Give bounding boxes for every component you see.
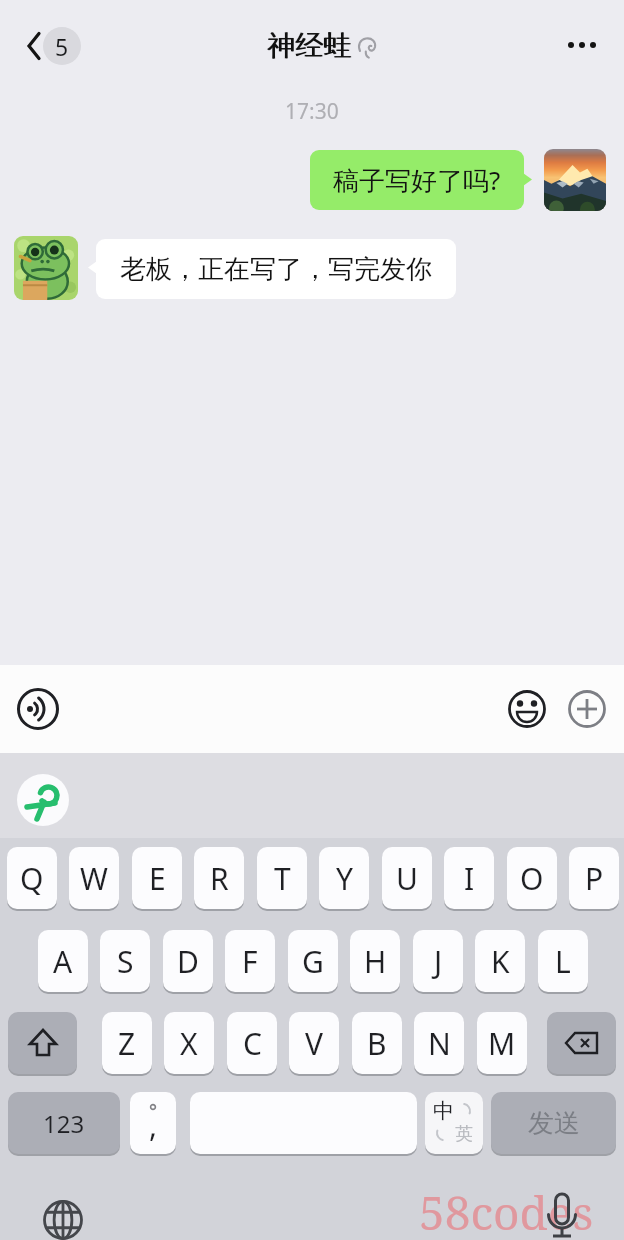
button[interactable]: D [163, 930, 213, 992]
button[interactable]: I [444, 847, 494, 909]
staticText: 发送 [528, 1107, 580, 1140]
button[interactable]: Y [319, 847, 369, 909]
staticText: R [210, 858, 229, 899]
staticText: B [367, 1023, 387, 1064]
staticText: L [555, 941, 571, 982]
staticText: S [117, 941, 134, 982]
button[interactable]: B [352, 1012, 402, 1074]
button[interactable]: G [288, 930, 338, 992]
staticText: X [180, 1023, 198, 1064]
button[interactable] [40, 1197, 86, 1240]
staticText: J [434, 941, 443, 982]
staticText: N [428, 1023, 451, 1064]
button[interactable]: 发送 [491, 1092, 616, 1154]
button[interactable] [14, 24, 54, 68]
button[interactable]: Q [7, 847, 57, 909]
staticText: I [464, 858, 475, 899]
button[interactable]: S [100, 930, 150, 992]
button[interactable]: 稿子写好了吗? [310, 150, 524, 210]
button[interactable]: L [538, 930, 588, 992]
staticText: O [520, 858, 544, 899]
button[interactable]: F [225, 930, 275, 992]
staticText: G [302, 941, 324, 982]
button[interactable] [544, 149, 606, 211]
button[interactable]: T [257, 847, 307, 909]
staticText: W [80, 858, 108, 899]
button[interactable]: C [227, 1012, 277, 1074]
button[interactable] [8, 1012, 77, 1074]
staticText: U [396, 858, 418, 899]
staticText: 中 [433, 1098, 454, 1124]
button[interactable]: O [507, 847, 557, 909]
staticText: , [149, 1105, 158, 1146]
button[interactable] [565, 687, 609, 731]
button[interactable]: N [414, 1012, 464, 1074]
staticText: E [149, 858, 166, 899]
button[interactable] [556, 24, 608, 66]
button[interactable]: 123 [8, 1092, 120, 1154]
staticText: Q [20, 858, 44, 899]
staticText: 老板，正在写了，写完发你 [120, 253, 432, 286]
button[interactable]: P [569, 847, 619, 909]
staticText: 123 [43, 1107, 85, 1140]
button[interactable]: V [289, 1012, 339, 1074]
button[interactable]: Z [102, 1012, 152, 1074]
staticText: F [242, 941, 258, 982]
button[interactable]: X [164, 1012, 214, 1074]
button[interactable]: K [475, 930, 525, 992]
staticText: M [488, 1023, 516, 1064]
staticText: 58codes [419, 1181, 594, 1240]
staticText: P [585, 858, 604, 899]
staticText: Z [118, 1023, 136, 1064]
button[interactable]: J [413, 930, 463, 992]
button[interactable]: A [38, 930, 88, 992]
staticText: 5 [55, 31, 69, 62]
button[interactable]: M [477, 1012, 527, 1074]
button[interactable]: W [69, 847, 119, 909]
button[interactable] [547, 1012, 616, 1074]
button[interactable] [540, 1193, 584, 1240]
button[interactable]: R [194, 847, 244, 909]
staticText: C [243, 1023, 262, 1064]
button[interactable]: U [382, 847, 432, 909]
staticText: 神经蛙 [267, 28, 351, 63]
button[interactable]: 老板，正在写了，写完发你 [96, 239, 456, 299]
staticText: 稿子写好了吗? [333, 162, 501, 198]
staticText: 17:30 [285, 97, 339, 126]
button[interactable] [17, 774, 69, 826]
button[interactable]: 中 [425, 1092, 483, 1154]
staticText: V [305, 1023, 323, 1064]
button[interactable]: H [350, 930, 400, 992]
staticText: T [274, 858, 291, 899]
staticText: 神经蛙 [268, 28, 352, 63]
button[interactable]: , [130, 1092, 176, 1154]
button[interactable] [505, 687, 549, 731]
button[interactable]: 5 [43, 27, 81, 65]
staticText: 英 [455, 1123, 473, 1146]
staticText: A [53, 941, 73, 982]
staticText: D [177, 941, 199, 982]
staticText: K [491, 941, 510, 982]
button[interactable] [190, 1092, 417, 1154]
staticText: Y [336, 858, 353, 899]
staticText: H [364, 941, 387, 982]
button[interactable] [15, 686, 61, 732]
button[interactable] [14, 236, 78, 300]
button[interactable]: E [132, 847, 182, 909]
